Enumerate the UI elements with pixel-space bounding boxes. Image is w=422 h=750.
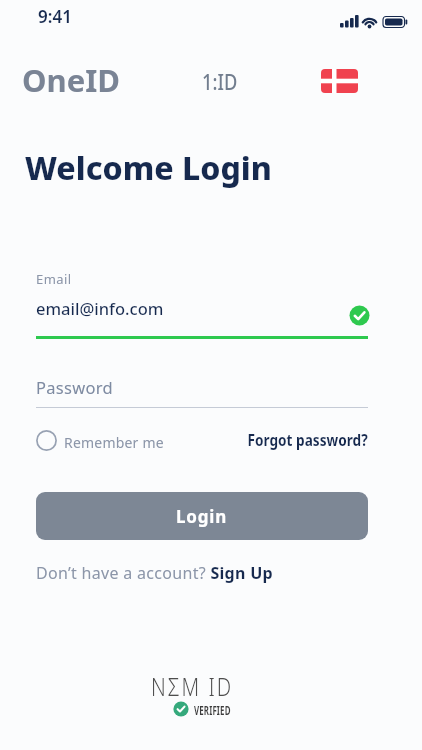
button[interactable]: Remember me (36, 430, 166, 451)
staticText: Login (176, 505, 228, 528)
staticText: OneID (22, 59, 120, 101)
button[interactable]: email@info.com (36, 296, 368, 338)
staticText: VERIFIED (194, 702, 231, 718)
staticText: Password (36, 376, 114, 398)
staticText: Remember me (64, 433, 164, 452)
staticText: Welcome Login (25, 146, 272, 190)
staticText: 1:ID (202, 67, 238, 96)
staticText: Forgot password? (247, 429, 368, 450)
button[interactable]: Login (36, 492, 368, 540)
staticText: NΣM ID (151, 669, 234, 703)
button[interactable]: Don’t have a account? Sign Up (36, 562, 273, 584)
button[interactable]: Password (36, 372, 368, 408)
staticText: email@info.com (36, 297, 164, 319)
staticText: 9:41 (38, 5, 72, 28)
staticText: Email (36, 270, 72, 288)
button[interactable] (321, 69, 358, 93)
staticText: Don’t have a account? Sign Up (36, 562, 273, 584)
button[interactable]: Forgot password? (180, 428, 368, 450)
